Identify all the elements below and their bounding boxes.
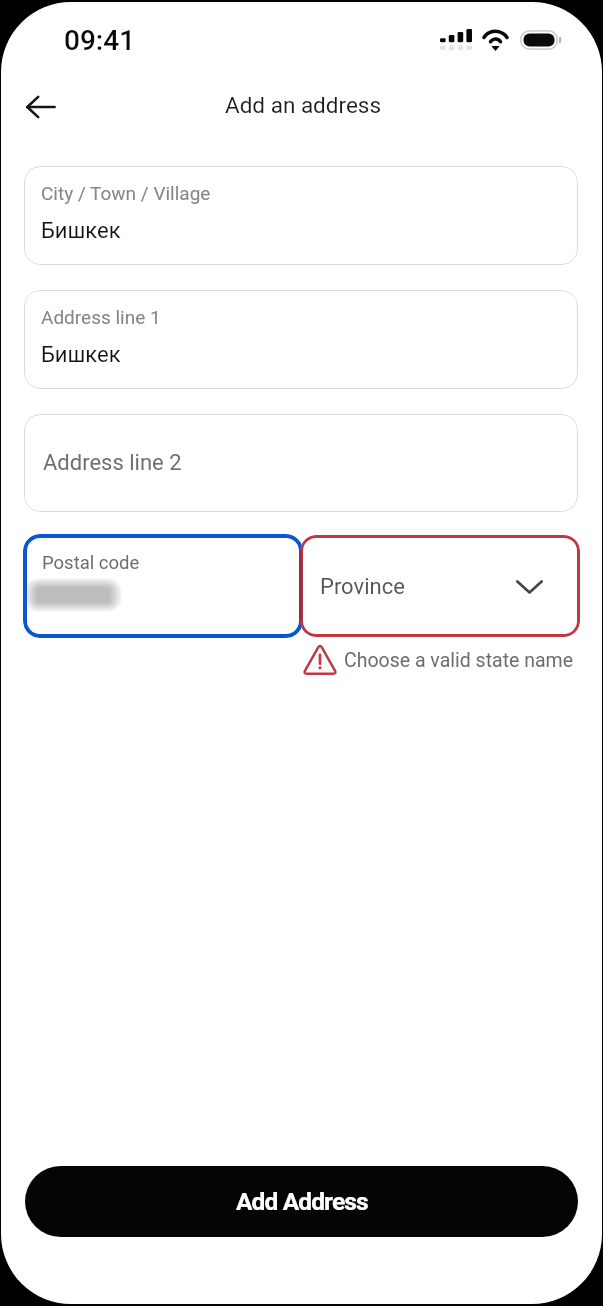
staticText: Address line 1 (41, 306, 161, 328)
staticText: City / Town / Village (41, 182, 211, 204)
staticText: Бишкек (41, 342, 121, 368)
button[interactable]: City / Town / Village (24, 166, 578, 265)
staticText: Add an address (225, 92, 382, 118)
button[interactable]: Postal code (23, 534, 303, 638)
button[interactable]: Address line 1 (24, 290, 578, 389)
staticText: Address line 2 (43, 450, 182, 476)
button[interactable]: Add Address (25, 1166, 578, 1237)
staticText: Province (320, 574, 405, 600)
button[interactable]: Address line 2 (24, 414, 578, 512)
staticText: 09:41 (64, 24, 136, 57)
staticText: Add Address (236, 1187, 368, 1216)
staticText: Бишкек (41, 218, 121, 244)
staticText: Choose a valid state name (344, 649, 574, 672)
staticText: Postal code (42, 552, 140, 574)
button[interactable]: Province (300, 535, 580, 637)
button[interactable]: Back (11, 78, 69, 136)
